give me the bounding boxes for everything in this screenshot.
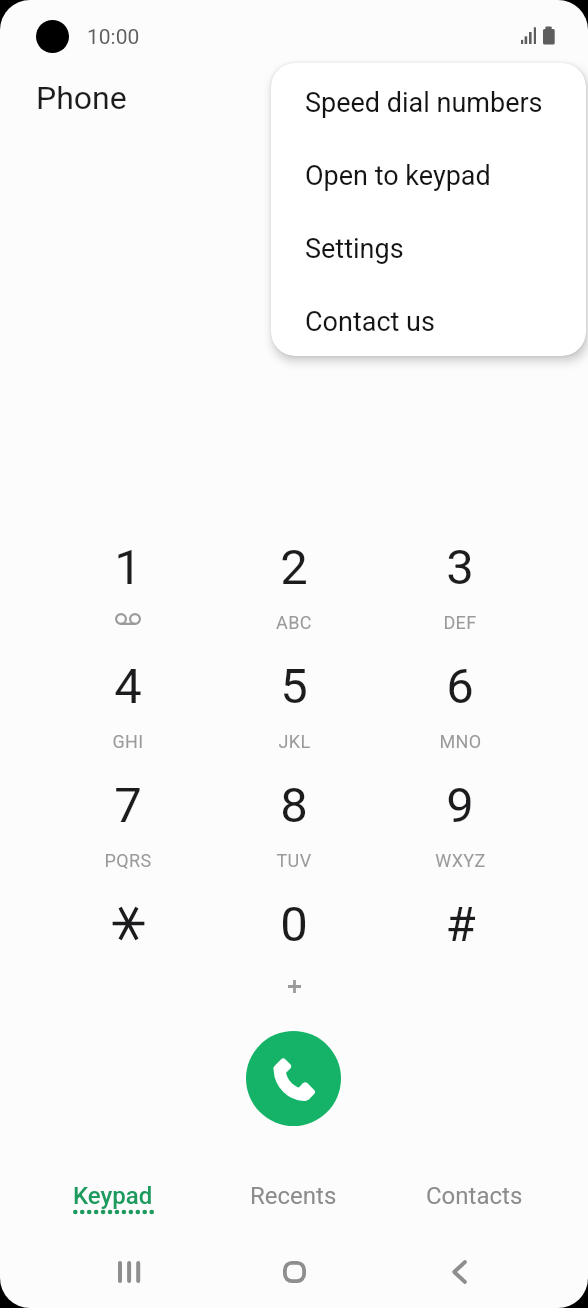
- staticText: 2: [280, 539, 308, 596]
- button[interactable]: Settings: [271, 209, 586, 282]
- button[interactable]: Recent apps: [46, 1236, 212, 1308]
- button[interactable]: 1: [45, 507, 211, 626]
- button[interactable]: Speed dial numbers: [271, 63, 586, 136]
- button[interactable]: Open to keypad: [271, 136, 586, 209]
- staticText: Phone: [36, 79, 127, 117]
- button[interactable]: Recents: [203, 1152, 384, 1236]
- button[interactable]: 9: [377, 745, 543, 864]
- staticText: 0: [280, 896, 308, 953]
- staticText: 4: [114, 658, 142, 715]
- staticText: 1: [114, 539, 142, 596]
- button[interactable]: Contact us: [271, 282, 586, 355]
- staticText: GHI: [112, 731, 144, 752]
- staticText: Recents: [250, 1182, 337, 1210]
- button[interactable]: Contacts: [384, 1152, 565, 1236]
- button[interactable]: 3: [377, 507, 543, 626]
- button[interactable]: Keypad: [23, 1152, 203, 1236]
- staticText: TUV: [276, 850, 312, 871]
- staticText: 7: [114, 777, 142, 834]
- button[interactable]: Call: [246, 1031, 341, 1126]
- staticText: 5: [280, 658, 308, 715]
- button[interactable]: 8: [211, 745, 377, 864]
- staticText: 6: [446, 658, 474, 715]
- button[interactable]: 5: [211, 626, 377, 745]
- staticText: 10:00: [87, 25, 140, 50]
- staticText: Open to keypad: [305, 160, 491, 192]
- button[interactable]: 6: [377, 626, 543, 745]
- staticText: Contacts: [426, 1182, 523, 1210]
- staticText: 9: [446, 777, 474, 834]
- staticText: Speed dial numbers: [305, 87, 543, 119]
- staticText: Settings: [305, 233, 404, 265]
- staticText: 8: [280, 777, 308, 834]
- button[interactable]: [45, 864, 211, 983]
- staticText: PQRS: [104, 850, 152, 871]
- staticText: DEF: [443, 612, 477, 633]
- staticText: Contact us: [305, 306, 435, 338]
- staticText: JKL: [278, 731, 311, 752]
- button[interactable]: Back: [377, 1236, 542, 1308]
- button[interactable]: #: [377, 864, 543, 983]
- button[interactable]: Home: [212, 1236, 377, 1308]
- staticText: Keypad: [73, 1182, 153, 1210]
- staticText: MNO: [439, 731, 482, 752]
- staticText: #: [445, 896, 476, 953]
- staticText: ABC: [276, 612, 312, 633]
- staticText: WXYZ: [435, 850, 486, 871]
- staticText: 3: [446, 539, 474, 596]
- button[interactable]: 7: [45, 745, 211, 864]
- button[interactable]: 4: [45, 626, 211, 745]
- button[interactable]: 2: [211, 507, 377, 626]
- button[interactable]: 0: [211, 864, 377, 983]
